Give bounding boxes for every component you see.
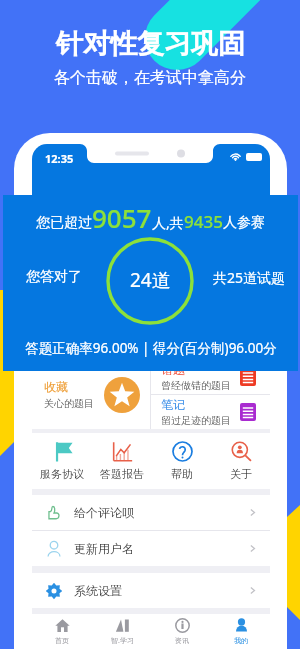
staticText: 9435 xyxy=(184,210,223,233)
staticText: 人参赛 xyxy=(223,214,265,232)
staticText: 给个评论呗 xyxy=(74,505,134,520)
button[interactable]: 首页 xyxy=(32,614,92,649)
staticText: 您已超过 xyxy=(36,214,92,232)
staticText: 服务协议 xyxy=(40,467,84,481)
staticText: 24道 xyxy=(130,267,171,293)
button[interactable]: 收藏 xyxy=(32,360,150,429)
button[interactable]: 给个评论呗 xyxy=(32,495,270,530)
staticText: 我的 xyxy=(234,636,248,645)
button[interactable]: 系统设置 xyxy=(32,573,270,608)
button[interactable]: 更新用户名 xyxy=(32,531,270,566)
staticText: 关心的题目 xyxy=(44,397,94,410)
staticText: 智.学习 xyxy=(111,636,134,646)
staticText: 9057 xyxy=(92,200,152,235)
staticText: 答题正确率96.00% | 得分(百分制)96.00分 xyxy=(25,339,277,357)
button[interactable]: 答题报告 xyxy=(92,433,152,489)
staticText: 人,共 xyxy=(152,213,184,232)
button[interactable]: 关于 xyxy=(212,433,270,489)
button[interactable]: 笔记 xyxy=(151,395,270,429)
staticText: 您答对了 xyxy=(26,268,82,286)
staticText: 共25道试题 xyxy=(213,268,286,287)
staticText: 系统设置 xyxy=(74,583,122,598)
staticText: 收藏 xyxy=(44,379,68,394)
staticText: 错题 xyxy=(161,362,185,377)
staticText: 答题报告 xyxy=(100,467,144,481)
staticText: 留过足迹的题目 xyxy=(161,414,231,427)
button[interactable]: 帮助 xyxy=(152,433,212,489)
staticText: 针对性复习巩固 xyxy=(56,27,245,61)
button[interactable]: 错题 xyxy=(151,360,270,394)
button[interactable]: 服务协议 xyxy=(32,433,92,489)
button[interactable]: 我的 xyxy=(212,614,270,649)
staticText: 更新用户名 xyxy=(74,541,134,556)
staticText: 笔记 xyxy=(161,397,185,412)
button[interactable]: 资讯 xyxy=(152,614,212,649)
staticText: 曾经做错的题目 xyxy=(161,379,231,392)
staticText: 首页 xyxy=(55,636,69,645)
staticText: 关于 xyxy=(230,467,252,481)
staticText: 帮助 xyxy=(171,467,193,481)
staticText: 12:35 xyxy=(45,151,74,166)
button[interactable]: 智.学习 xyxy=(92,614,152,649)
staticText: 资讯 xyxy=(175,636,189,645)
staticText: 各个击破，在考试中拿高分 xyxy=(54,68,246,88)
